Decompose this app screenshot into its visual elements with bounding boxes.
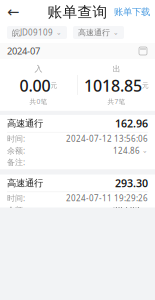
staticText: 124.86 [113, 145, 140, 156]
staticText: 高速通行 [78, 28, 110, 37]
staticText: 账单查询 [47, 3, 107, 21]
staticText: 共0笔 [30, 97, 48, 106]
staticText: 余额: [7, 145, 25, 156]
staticText: 高速通行 [7, 177, 43, 189]
staticText: 元 [142, 81, 149, 90]
staticText: 元 [51, 81, 58, 90]
staticText: 2024-07-11 19:29:26 [66, 193, 148, 203]
button[interactable]: 2024-07 [0, 43, 155, 59]
staticText: ⌄ [140, 206, 148, 214]
staticText: 高速通行 [7, 118, 43, 129]
button[interactable]: 高速通行 [0, 115, 155, 169]
button[interactable]: 皖JD09109 [7, 26, 67, 39]
button[interactable]: Back [0, 2, 26, 22]
staticText: 皖JD09109 [12, 27, 53, 38]
staticText: 共7笔 [107, 97, 125, 106]
staticText: 162.96 [115, 116, 148, 130]
staticText: 0.00 [20, 75, 51, 96]
staticText: ⌄ [113, 29, 119, 36]
staticText: 余额: [7, 205, 25, 215]
button[interactable]: 高速通行 [73, 26, 124, 39]
staticText: 入 [35, 64, 43, 74]
staticText: 2024-07-12 13:56:06 [66, 133, 148, 144]
staticText: 时间: [7, 133, 25, 144]
staticText: ⌄ [56, 29, 62, 36]
staticText: 293.30 [115, 176, 148, 190]
button[interactable]: 高速通行 [0, 174, 155, 229]
staticText: 时间: [7, 193, 25, 203]
staticText: 账单下载 [114, 6, 150, 18]
staticText: 287.82 [113, 205, 140, 215]
staticText: 出 [112, 64, 120, 74]
button[interactable]: 账单下载 [109, 2, 155, 22]
staticText: ← [7, 4, 19, 20]
staticText: 2024-07 [7, 45, 40, 57]
staticText: 备注: [7, 157, 25, 167]
staticText: ⌄ [140, 147, 148, 154]
staticText: 1018.85 [84, 75, 142, 96]
